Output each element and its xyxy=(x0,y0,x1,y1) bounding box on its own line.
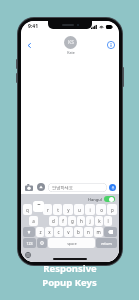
staticText: o xyxy=(100,207,103,213)
button[interactable]: b xyxy=(74,227,83,237)
button[interactable]: Send xyxy=(109,184,116,191)
staticText: x xyxy=(48,229,51,235)
button[interactable]: h xyxy=(77,216,85,226)
button[interactable]: d xyxy=(49,216,58,226)
button[interactable]: g xyxy=(68,216,76,226)
staticText: n xyxy=(87,229,90,235)
button[interactable]: u xyxy=(74,204,84,215)
staticText: return xyxy=(101,241,112,246)
button[interactable]: y xyxy=(63,204,73,215)
button[interactable]: KS xyxy=(64,36,77,55)
button[interactable]: i xyxy=(85,204,95,215)
staticText: S xyxy=(37,202,41,212)
staticText: d xyxy=(52,218,55,224)
staticText: k xyxy=(98,218,101,224)
staticText: z xyxy=(39,229,42,235)
button[interactable]: Shift xyxy=(23,227,35,237)
button[interactable]: l xyxy=(104,216,112,226)
button[interactable]: Switch keyboard xyxy=(24,251,32,259)
staticText: 9:41 xyxy=(28,23,38,30)
button[interactable]: 안녕하세요 xyxy=(48,183,107,192)
button[interactable]: space xyxy=(48,238,95,248)
button[interactable]: Emoji xyxy=(37,238,47,248)
button[interactable]: k xyxy=(95,216,103,226)
staticText: a xyxy=(32,218,35,224)
staticText: r xyxy=(47,207,49,213)
button[interactable]: r xyxy=(43,204,52,215)
button[interactable]: Backspace xyxy=(104,227,117,237)
button[interactable]: v xyxy=(64,227,73,237)
button[interactable]: t xyxy=(53,204,62,215)
button[interactable]: m xyxy=(94,227,103,237)
staticText: b xyxy=(77,229,80,235)
button[interactable]: a xyxy=(29,216,38,226)
staticText: 123 xyxy=(26,241,33,246)
button[interactable]: f xyxy=(59,216,67,226)
button[interactable]: n xyxy=(84,227,93,237)
staticText: m xyxy=(96,229,101,235)
staticText: Hangul xyxy=(88,197,102,202)
button[interactable]: q xyxy=(23,204,32,215)
staticText: v xyxy=(67,229,70,235)
staticText: i xyxy=(89,207,91,213)
staticText: 안녕하세요 xyxy=(52,185,73,190)
staticText: l xyxy=(107,218,109,224)
button[interactable]: z xyxy=(36,227,44,237)
button[interactable]: Info xyxy=(105,39,117,51)
button[interactable]: j xyxy=(86,216,94,226)
staticText: p xyxy=(111,207,114,213)
button[interactable]: Back xyxy=(23,39,35,51)
staticText: g xyxy=(71,218,74,224)
staticText: Kate xyxy=(67,50,75,55)
button[interactable]: 123 xyxy=(23,238,36,248)
button[interactable]: S xyxy=(33,201,44,212)
staticText: c xyxy=(57,229,60,235)
button[interactable]: Hangul xyxy=(88,196,115,202)
button[interactable]: x xyxy=(45,227,53,237)
staticText: y xyxy=(67,207,70,213)
staticText: f xyxy=(62,218,64,224)
button[interactable]: c xyxy=(54,227,63,237)
staticText: u xyxy=(78,207,81,213)
button[interactable]: o xyxy=(96,204,106,215)
staticText: KS xyxy=(68,39,74,46)
button[interactable]: Apps xyxy=(36,182,46,192)
button[interactable]: Camera xyxy=(24,182,34,192)
staticText: Responsive xyxy=(43,262,97,275)
button[interactable]: return xyxy=(96,238,117,248)
button[interactable]: p xyxy=(107,204,117,215)
staticText: space xyxy=(67,241,77,246)
staticText: j xyxy=(89,218,91,224)
staticText: h xyxy=(80,218,83,224)
staticText: t xyxy=(57,207,59,213)
staticText: Popup Keys xyxy=(42,276,97,289)
staticText: q xyxy=(26,207,29,213)
